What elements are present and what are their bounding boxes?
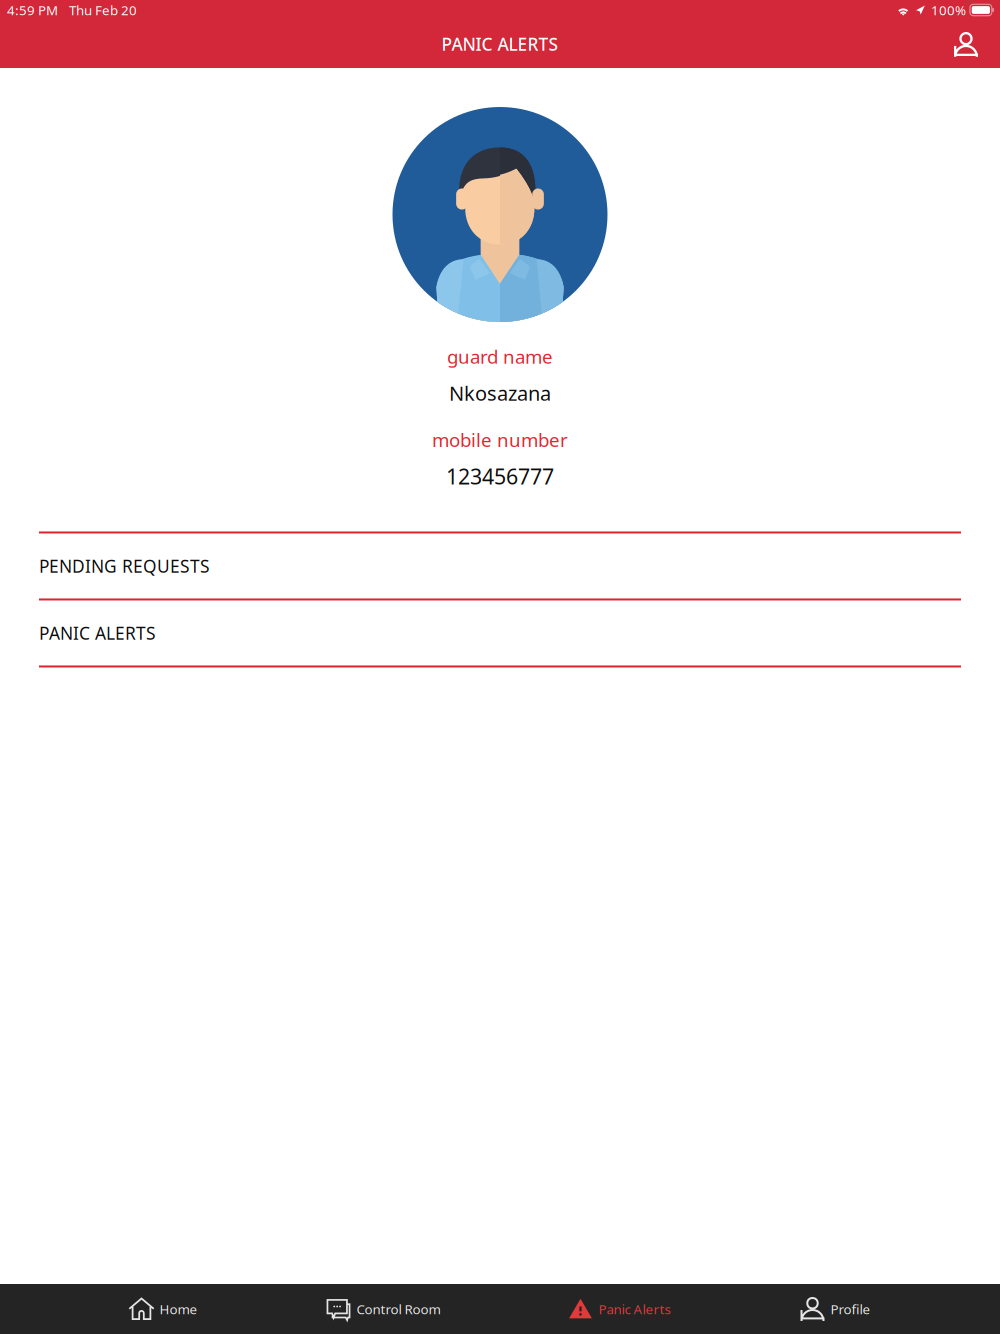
staticText: Home <box>159 1300 197 1318</box>
staticText: 100% <box>931 1 966 19</box>
staticText: Thu Feb 20 <box>69 1 137 19</box>
button[interactable]: Home <box>50 1284 275 1334</box>
staticText: 123456777 <box>446 462 554 490</box>
staticText: Nkosazana <box>449 380 551 406</box>
staticText: mobile number <box>432 427 568 452</box>
staticText: guard name <box>447 344 553 369</box>
staticText: Profile <box>830 1300 870 1318</box>
staticText: PENDING REQUESTS <box>39 554 210 577</box>
staticText: PANIC ALERTS <box>39 621 156 644</box>
button[interactable]: PANIC ALERTS <box>0 600 1000 665</box>
staticText: PANIC ALERTS <box>441 32 558 55</box>
button[interactable]: Profile <box>725 1284 950 1334</box>
staticText: Panic Alerts <box>598 1300 670 1318</box>
button[interactable]: PENDING REQUESTS <box>0 533 1000 598</box>
button[interactable]: Panic Alerts <box>500 1284 725 1334</box>
staticText: 4:59 PM <box>7 1 58 19</box>
button[interactable]: Control Room <box>275 1284 500 1334</box>
button[interactable]: Account <box>944 22 988 66</box>
staticText: Control Room <box>356 1300 440 1318</box>
